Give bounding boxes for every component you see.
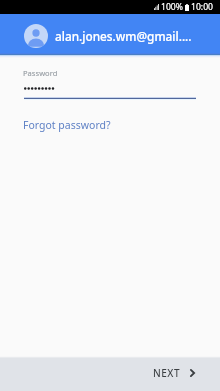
- staticText: alan.jones.wm@gmail....: [55, 28, 192, 44]
- staticText: 100%: [161, 1, 183, 13]
- staticText: Password: [23, 68, 58, 78]
- other: Account avatar: [24, 24, 48, 48]
- button[interactable]: Account avatar: [0, 22, 220, 46]
- button[interactable]: NEXT: [139, 360, 220, 390]
- button[interactable]: Password field: [20, 80, 200, 102]
- staticText: NEXT: [153, 366, 181, 380]
- staticText: 10:00: [191, 1, 213, 13]
- button[interactable]: Forgot password?: [23, 118, 113, 132]
- staticText: Forgot password?: [23, 118, 111, 132]
